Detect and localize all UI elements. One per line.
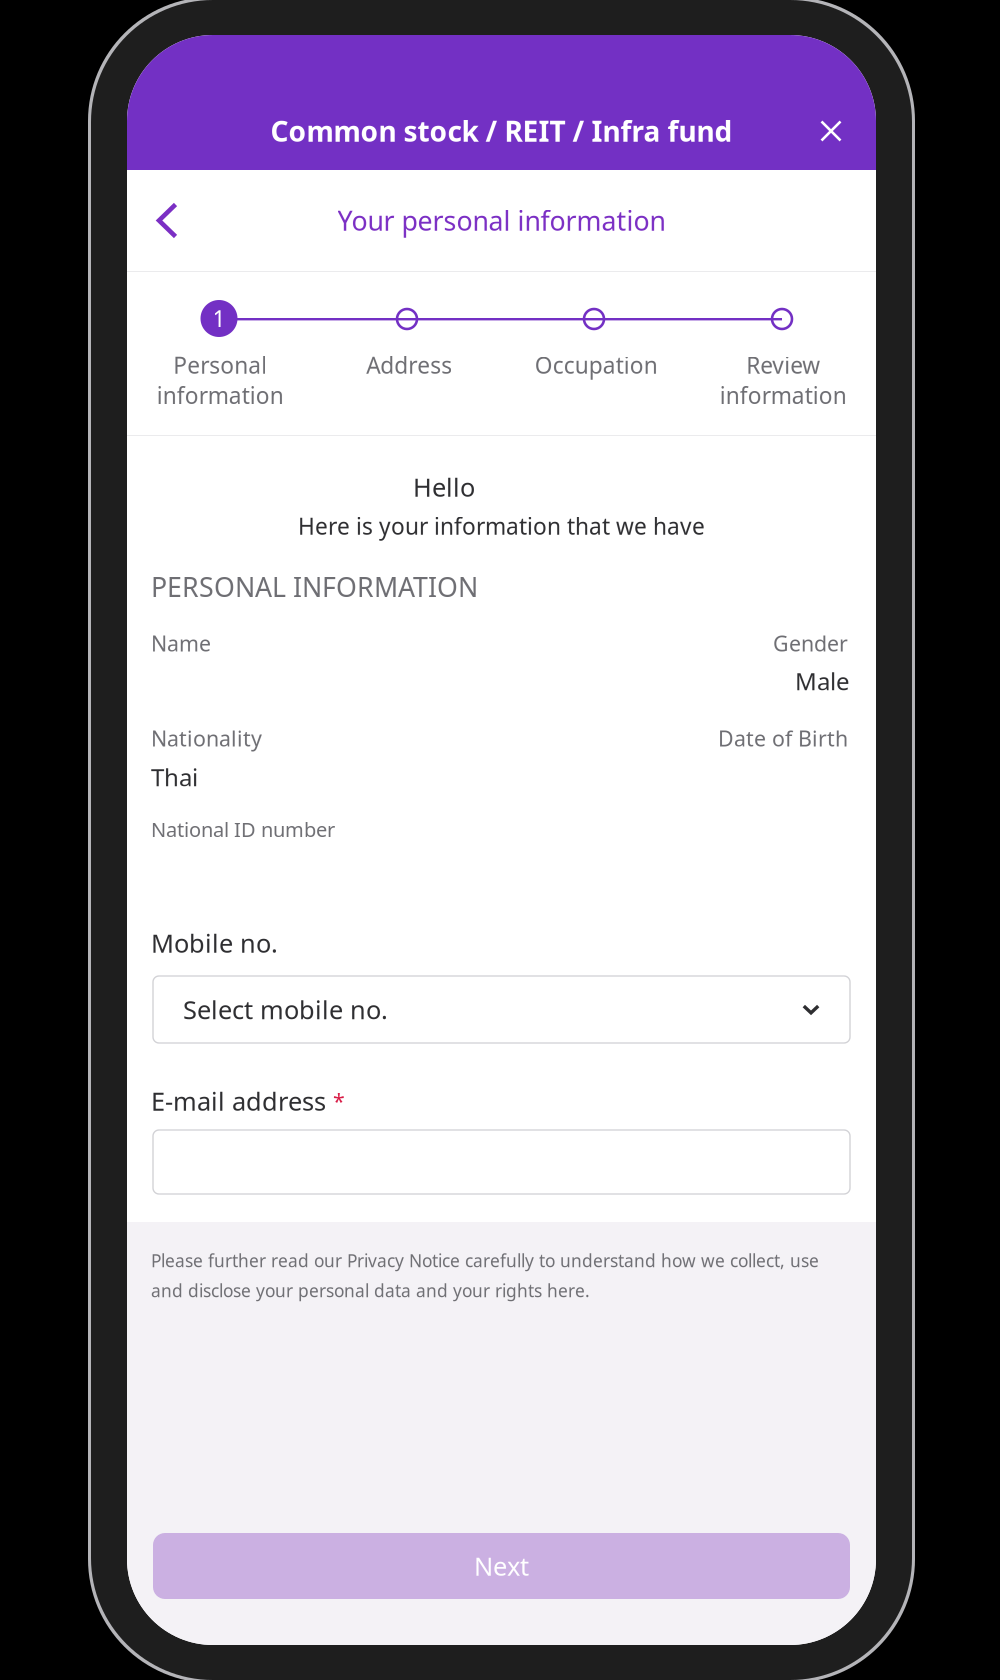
staticText: Personal information bbox=[156, 350, 283, 410]
button[interactable]: Select mobile no. bbox=[153, 976, 850, 1043]
staticText: * bbox=[333, 1087, 345, 1115]
staticText: Here is your information that we have bbox=[298, 511, 705, 541]
staticText: PERSONAL INFORMATION bbox=[151, 569, 478, 604]
staticText: Mobile no. bbox=[151, 926, 278, 960]
staticText: Common stock / REIT / Infra fund bbox=[270, 112, 732, 150]
staticText: Next bbox=[474, 1549, 529, 1583]
staticText: E-mail address bbox=[151, 1084, 326, 1118]
staticText: National ID number bbox=[151, 816, 335, 843]
button[interactable]: Close bbox=[805, 105, 857, 157]
staticText: Hello bbox=[413, 470, 475, 504]
staticText: Gender bbox=[773, 629, 848, 657]
staticText: Review information bbox=[719, 350, 846, 410]
button[interactable]: Next bbox=[153, 1533, 850, 1599]
staticText: 1 bbox=[212, 303, 225, 333]
staticText: Name bbox=[151, 629, 211, 657]
staticText: Thai bbox=[151, 761, 198, 793]
staticText: Nationality bbox=[151, 724, 262, 752]
staticText: Occupation bbox=[534, 350, 657, 380]
button[interactable]: Back bbox=[138, 191, 196, 249]
staticText: Male bbox=[795, 665, 850, 697]
staticText: Your personal information bbox=[337, 203, 665, 238]
staticText: Address bbox=[366, 350, 452, 380]
staticText: Date of Birth bbox=[718, 724, 848, 752]
staticText: Please further read our Privacy Notice c… bbox=[151, 1249, 819, 1302]
staticText: Select mobile no. bbox=[183, 993, 388, 1026]
